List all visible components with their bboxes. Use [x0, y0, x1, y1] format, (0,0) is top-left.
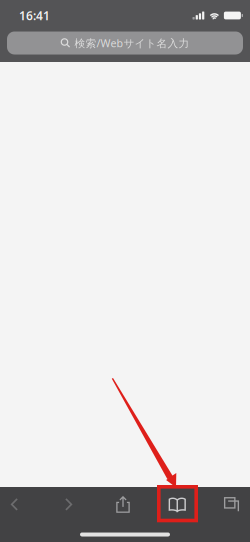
button[interactable]: Back	[0, 487, 29, 521]
staticText: 16:41	[19, 7, 50, 23]
staticText: 検索/Webサイト名入力	[74, 36, 189, 50]
button[interactable]: Bookmarks	[163, 487, 192, 521]
button[interactable]: Tabs	[217, 487, 246, 521]
button[interactable]: Forward	[54, 487, 83, 521]
button[interactable]: Share	[108, 487, 137, 521]
button[interactable]: 検索/Webサイト名入力	[7, 31, 243, 54]
